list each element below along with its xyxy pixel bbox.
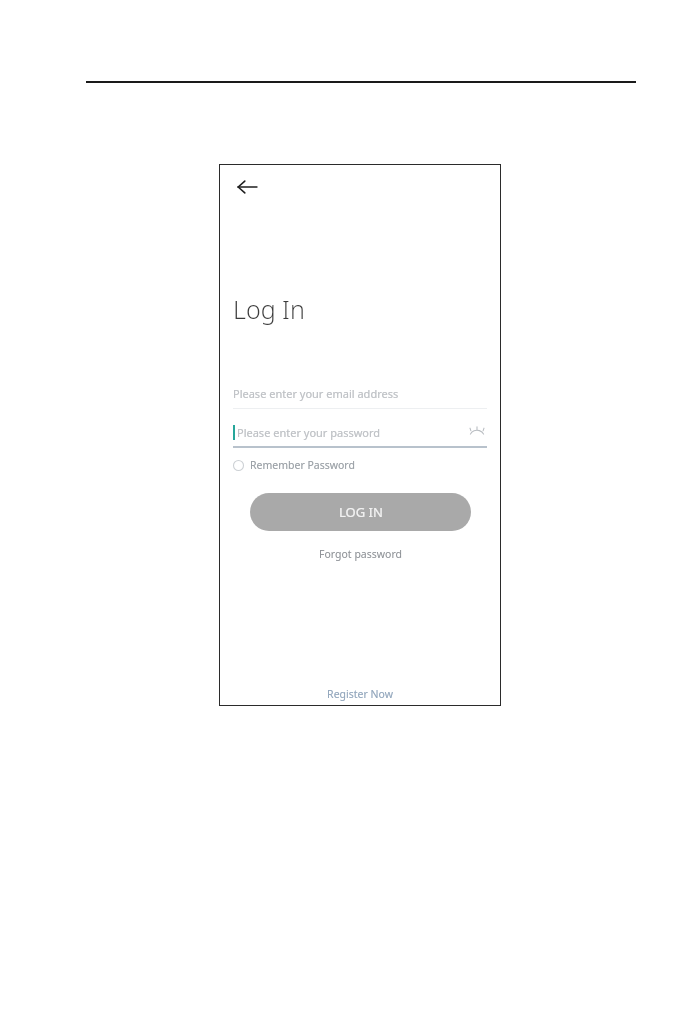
button[interactable]: Back (229, 169, 265, 205)
staticText: LOG IN (339, 503, 383, 521)
staticText: Remember Password (250, 458, 355, 472)
button[interactable]: LOG IN (250, 493, 471, 531)
button[interactable]: Please enter your email address (233, 386, 487, 409)
button[interactable]: Forgot password (313, 545, 408, 563)
staticText: Please enter your email address (233, 386, 399, 401)
staticText: Please enter your password (237, 425, 467, 440)
staticText: Log In (233, 292, 305, 326)
button[interactable]: Show password (467, 424, 487, 440)
button[interactable]: Remember Password (233, 458, 355, 472)
staticText: Forgot password (319, 547, 402, 561)
button[interactable]: Register Now (321, 685, 399, 703)
staticText: Register Now (327, 687, 393, 701)
button[interactable]: Please enter your password (233, 424, 487, 440)
